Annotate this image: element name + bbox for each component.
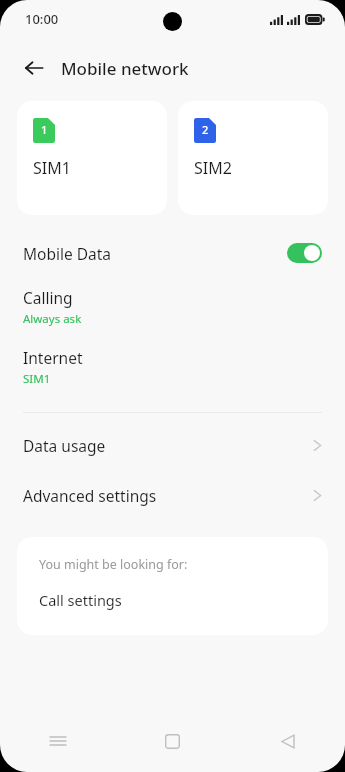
staticText: 10:00	[25, 10, 59, 28]
button[interactable]: 1	[17, 101, 167, 215]
button[interactable]: Advanced settings	[0, 470, 345, 520]
staticText: Mobile Data	[23, 243, 287, 264]
button[interactable]: Home	[115, 710, 230, 772]
button[interactable]: Calling	[0, 277, 345, 337]
staticText: SIM1	[33, 157, 71, 179]
staticText: 2	[202, 122, 209, 137]
button[interactable]: Recent apps	[0, 710, 115, 772]
other: Mobile Data toggle	[287, 243, 322, 263]
staticText: You might be looking for:	[39, 556, 188, 573]
button[interactable]: Mobile Data	[0, 229, 345, 277]
staticText: SIM2	[194, 157, 232, 179]
button[interactable]: 2	[178, 101, 328, 215]
button[interactable]: Internet	[0, 337, 345, 397]
staticText: Advanced settings	[23, 485, 313, 506]
button[interactable]: Call settings	[17, 586, 328, 614]
staticText: Mobile network	[61, 57, 189, 80]
staticText: Calling	[23, 287, 73, 308]
staticText: Call settings	[39, 590, 122, 610]
staticText: 1	[41, 122, 48, 137]
button[interactable]: Data usage	[0, 420, 345, 470]
button[interactable]: Back	[17, 51, 51, 85]
staticText: Always ask	[23, 311, 82, 327]
staticText: SIM1	[23, 371, 51, 387]
staticText: Internet	[23, 347, 83, 368]
staticText: Data usage	[23, 435, 313, 456]
button[interactable]: Back	[230, 710, 345, 772]
